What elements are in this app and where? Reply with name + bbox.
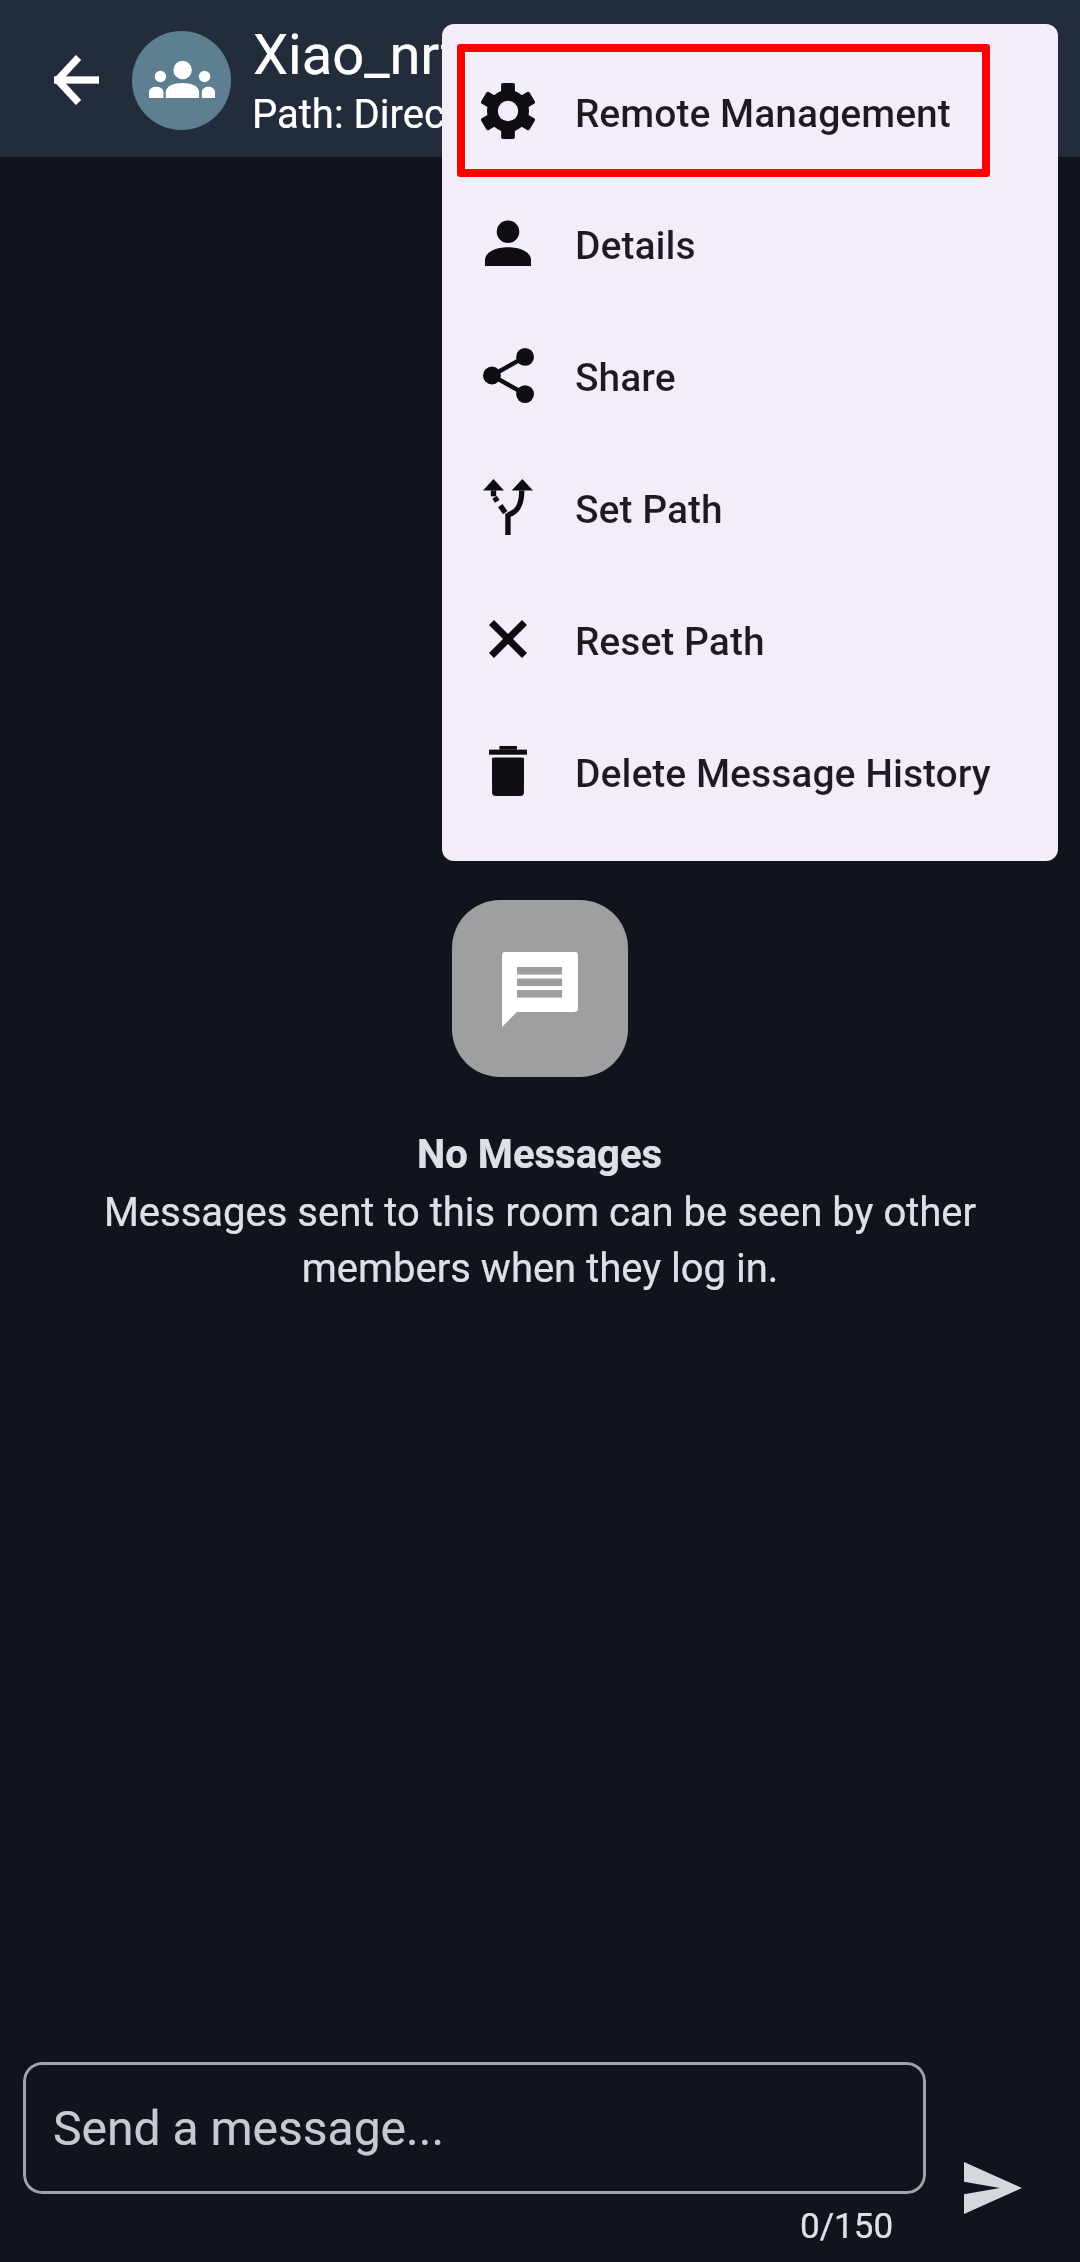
button[interactable]: Send [945,2140,1041,2236]
button[interactable]: Remote Management [442,45,1058,177]
button[interactable]: Set Path [442,441,1058,573]
staticText: Path: Direct Message [252,91,631,138]
staticText: Delete Message History [575,751,991,797]
button[interactable]: Details [442,177,1058,309]
staticText: Reset Path [575,619,765,665]
staticText: Messages sent to this room can be seen b… [90,1189,990,1291]
button[interactable]: Delete Message History [442,705,1058,837]
button[interactable]: Reset Path [442,573,1058,705]
staticText: Set Path [575,487,723,533]
button[interactable]: Back [16,25,136,135]
staticText: Remote Management [575,91,951,137]
staticText: 0/150 [800,2206,894,2247]
button[interactable]: Share [442,309,1058,441]
staticText: Details [575,223,696,269]
button[interactable]: Send a message... [23,2062,926,2194]
staticText: Xiao_nrt [253,22,459,88]
staticText: Send a message... [53,2100,445,2156]
staticText: Share [575,355,676,401]
staticText: No Messages [417,1131,663,1178]
